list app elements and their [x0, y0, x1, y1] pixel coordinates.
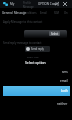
staticText: email — [60, 79, 68, 83]
button[interactable]: Help — [54, 1, 60, 7]
staticText: OPTION Config — [38, 2, 59, 6]
button[interactable]: neither — [0, 100, 72, 107]
staticText: On — [64, 11, 68, 15]
button[interactable]: Send reply — [25, 46, 50, 52]
staticText: SIM — [54, 11, 59, 15]
staticText: Select — [51, 32, 59, 36]
button[interactable]: Conditions — [23, 11, 37, 15]
staticText: General — [2, 11, 13, 15]
staticText: Profile — [23, 1, 31, 5]
button[interactable]: General — [2, 11, 13, 15]
button[interactable]: both — [3, 86, 70, 96]
staticText: Conditions — [23, 11, 37, 15]
button[interactable]: sms — [0, 68, 72, 75]
staticText: Send reply — [31, 47, 44, 51]
staticText: neither — [57, 102, 68, 106]
staticText: Select option — [25, 60, 46, 65]
staticText: Reply Type — [27, 56, 39, 59]
button[interactable]: Email — [40, 11, 47, 15]
staticText: Send reply message to contact — [3, 41, 42, 45]
button[interactable]: My — [10, 2, 15, 6]
button[interactable]: Select — [24, 30, 67, 38]
button[interactable]: SIM — [54, 11, 59, 15]
button[interactable]: Message — [14, 11, 27, 15]
staticText: Email — [40, 11, 47, 15]
button[interactable]: On — [64, 11, 68, 15]
button[interactable]: email — [0, 77, 72, 84]
staticText: both — [61, 89, 68, 93]
staticText: Message — [23, 5, 34, 9]
staticText: Message — [14, 11, 27, 15]
button[interactable]: Close — [62, 1, 68, 7]
staticText: sms — [62, 70, 68, 74]
staticText: Apply Message to this contact — [3, 20, 43, 24]
staticText: My — [10, 2, 15, 6]
